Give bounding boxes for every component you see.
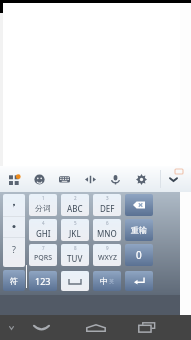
button[interactable]: 重输 [125, 219, 153, 241]
staticText: 1 [42, 195, 45, 201]
staticText: 5 [74, 220, 77, 226]
staticText: WXYZ [98, 253, 117, 263]
button[interactable]: 5 [61, 219, 89, 241]
button[interactable]: Comma [3, 194, 25, 216]
button[interactable]: 8 [61, 244, 89, 266]
button[interactable]: Question mark [3, 237, 25, 267]
button[interactable]: Back [30, 315, 52, 340]
button[interactable]: Settings [129, 166, 153, 192]
staticText: 9 [106, 245, 109, 251]
button[interactable]: 0 [125, 244, 153, 266]
button[interactable]: Cursor [78, 166, 102, 192]
button[interactable]: 123 [29, 271, 57, 291]
staticText: 6 [106, 220, 109, 226]
staticText: 3 [106, 195, 109, 201]
staticText: 中 [100, 276, 108, 286]
button[interactable]: 4 [29, 219, 57, 241]
staticText: GHI [36, 228, 51, 239]
staticText: 重输 [131, 225, 147, 235]
button[interactable]: Keyboard themes [2, 166, 26, 192]
button[interactable]: Enter [125, 271, 153, 291]
button[interactable]: Voice input [103, 166, 127, 192]
staticText: 7 [42, 245, 45, 251]
staticText: ? [12, 243, 16, 255]
button[interactable]: 3 [93, 194, 121, 216]
staticText: 0 [136, 248, 142, 262]
button[interactable]: 中 [93, 271, 121, 291]
staticText: PQRS [34, 253, 53, 263]
button[interactable]: Space [61, 271, 89, 291]
staticText: TUV [67, 253, 83, 264]
button[interactable]: Switch input method [3, 315, 19, 340]
button[interactable]: Hide keyboard [161, 166, 185, 192]
button[interactable]: Backspace [125, 194, 153, 216]
staticText: 123 [35, 275, 51, 287]
button[interactable]: 9 [93, 244, 121, 266]
staticText: ABC [67, 203, 83, 214]
button[interactable]: 6 [93, 219, 121, 241]
staticText: 英 [109, 278, 114, 284]
staticText: 2 [74, 195, 77, 201]
button[interactable]: Recent apps [134, 315, 158, 340]
staticText: 4 [42, 220, 45, 226]
button[interactable]: 1 [29, 194, 57, 216]
button[interactable]: Keyboard layout [52, 166, 76, 192]
button[interactable]: 7 [29, 244, 57, 266]
button[interactable]: Emoji [27, 166, 51, 192]
staticText: DEF [100, 203, 115, 214]
staticText: MNO [97, 228, 117, 239]
staticText: 分词 [35, 203, 51, 213]
staticText: 8 [74, 245, 77, 251]
staticText: 符 [10, 276, 18, 286]
button[interactable]: Period [3, 216, 25, 237]
button[interactable]: 符 [3, 270, 25, 291]
staticText: JKL [69, 228, 81, 239]
button[interactable]: Home [84, 315, 108, 340]
button[interactable]: 2 [61, 194, 89, 216]
